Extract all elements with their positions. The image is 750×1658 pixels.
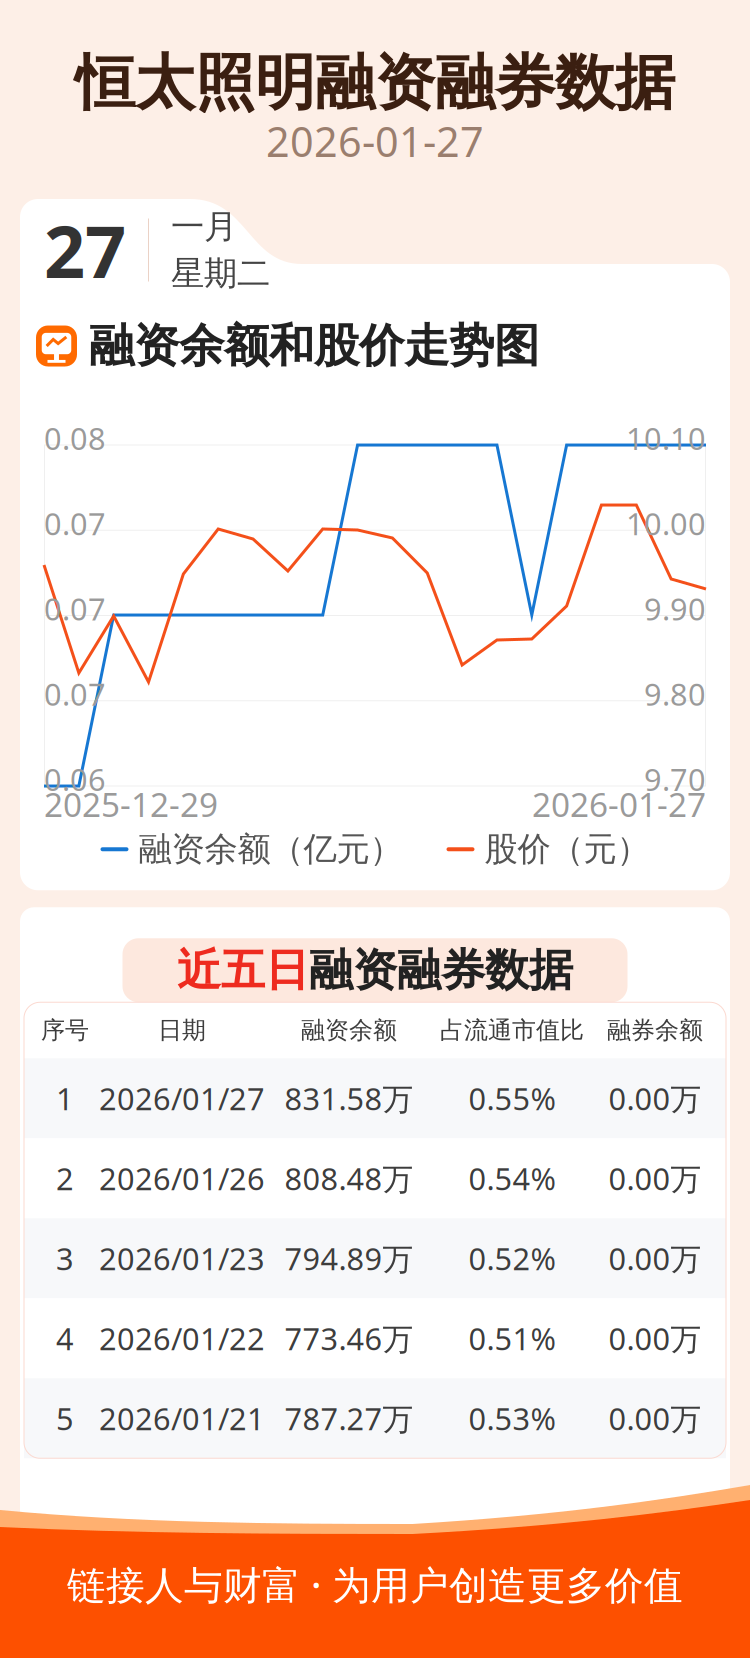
- staticText: 2026/01/27: [99, 1078, 265, 1119]
- staticText: 9.80: [644, 673, 706, 714]
- staticText: 0.07: [44, 673, 106, 714]
- staticText: 0.53%: [468, 1398, 555, 1439]
- staticText: 2026-01-27: [266, 114, 484, 168]
- staticText: 融资余额和股价走势图: [89, 318, 539, 374]
- staticText: 2026/01/26: [99, 1158, 265, 1199]
- staticText: 2026/01/22: [99, 1318, 265, 1359]
- staticText: 星期二: [171, 253, 270, 294]
- staticText: 794.89万: [284, 1238, 413, 1279]
- staticText: 0.07: [44, 588, 106, 629]
- staticText: 2026-01-27: [532, 782, 706, 826]
- staticText: 808.48万: [284, 1158, 413, 1199]
- staticText: 0.07: [44, 503, 106, 544]
- staticText: 0.54%: [468, 1158, 555, 1199]
- staticText: 恒太照明融资融券数据: [75, 46, 675, 120]
- staticText: 0.00万: [608, 1238, 701, 1279]
- staticText: 0.06: [44, 759, 106, 799]
- staticText: 链接人与财富 · 为用户创造更多价值: [67, 1559, 683, 1610]
- staticText: 日期: [158, 1015, 206, 1045]
- staticText: 3: [56, 1238, 74, 1279]
- staticText: 27: [44, 202, 126, 298]
- staticText: 股价（元）: [484, 829, 649, 870]
- staticText: 0.08: [44, 418, 106, 458]
- staticText: 近五日: [177, 943, 309, 997]
- staticText: 5: [56, 1398, 74, 1439]
- staticText: 融券余额: [607, 1015, 703, 1045]
- staticText: 融资余额（亿元）: [138, 829, 402, 870]
- staticText: 831.58万: [284, 1078, 413, 1119]
- staticText: 2026/01/21: [99, 1398, 265, 1439]
- staticText: 2026/01/23: [99, 1238, 265, 1279]
- staticText: 10.00: [626, 503, 706, 544]
- staticText: 0.00万: [608, 1158, 701, 1199]
- staticText: 9.90: [644, 588, 706, 629]
- staticText: 2: [56, 1158, 74, 1199]
- staticText: 0.00万: [608, 1078, 701, 1119]
- staticText: 0.55%: [468, 1078, 555, 1119]
- staticText: 序号: [41, 1015, 89, 1045]
- staticText: 4: [56, 1318, 74, 1359]
- staticText: 773.46万: [284, 1318, 413, 1359]
- staticText: 787.27万: [284, 1398, 413, 1439]
- staticText: 0.51%: [468, 1318, 555, 1359]
- staticText: 1: [56, 1078, 74, 1119]
- staticText: 9.70: [644, 759, 706, 799]
- staticText: 10.10: [626, 418, 706, 458]
- staticText: 0.00万: [608, 1398, 701, 1439]
- staticText: 占流通市值比: [440, 1015, 584, 1045]
- staticText: 融资余额: [301, 1015, 397, 1045]
- staticText: 2025-12-29: [44, 782, 218, 826]
- staticText: 0.00万: [608, 1318, 701, 1359]
- staticText: 融资融券数据: [309, 943, 573, 997]
- staticText: 0.52%: [468, 1238, 555, 1279]
- staticText: 一月: [171, 206, 237, 247]
